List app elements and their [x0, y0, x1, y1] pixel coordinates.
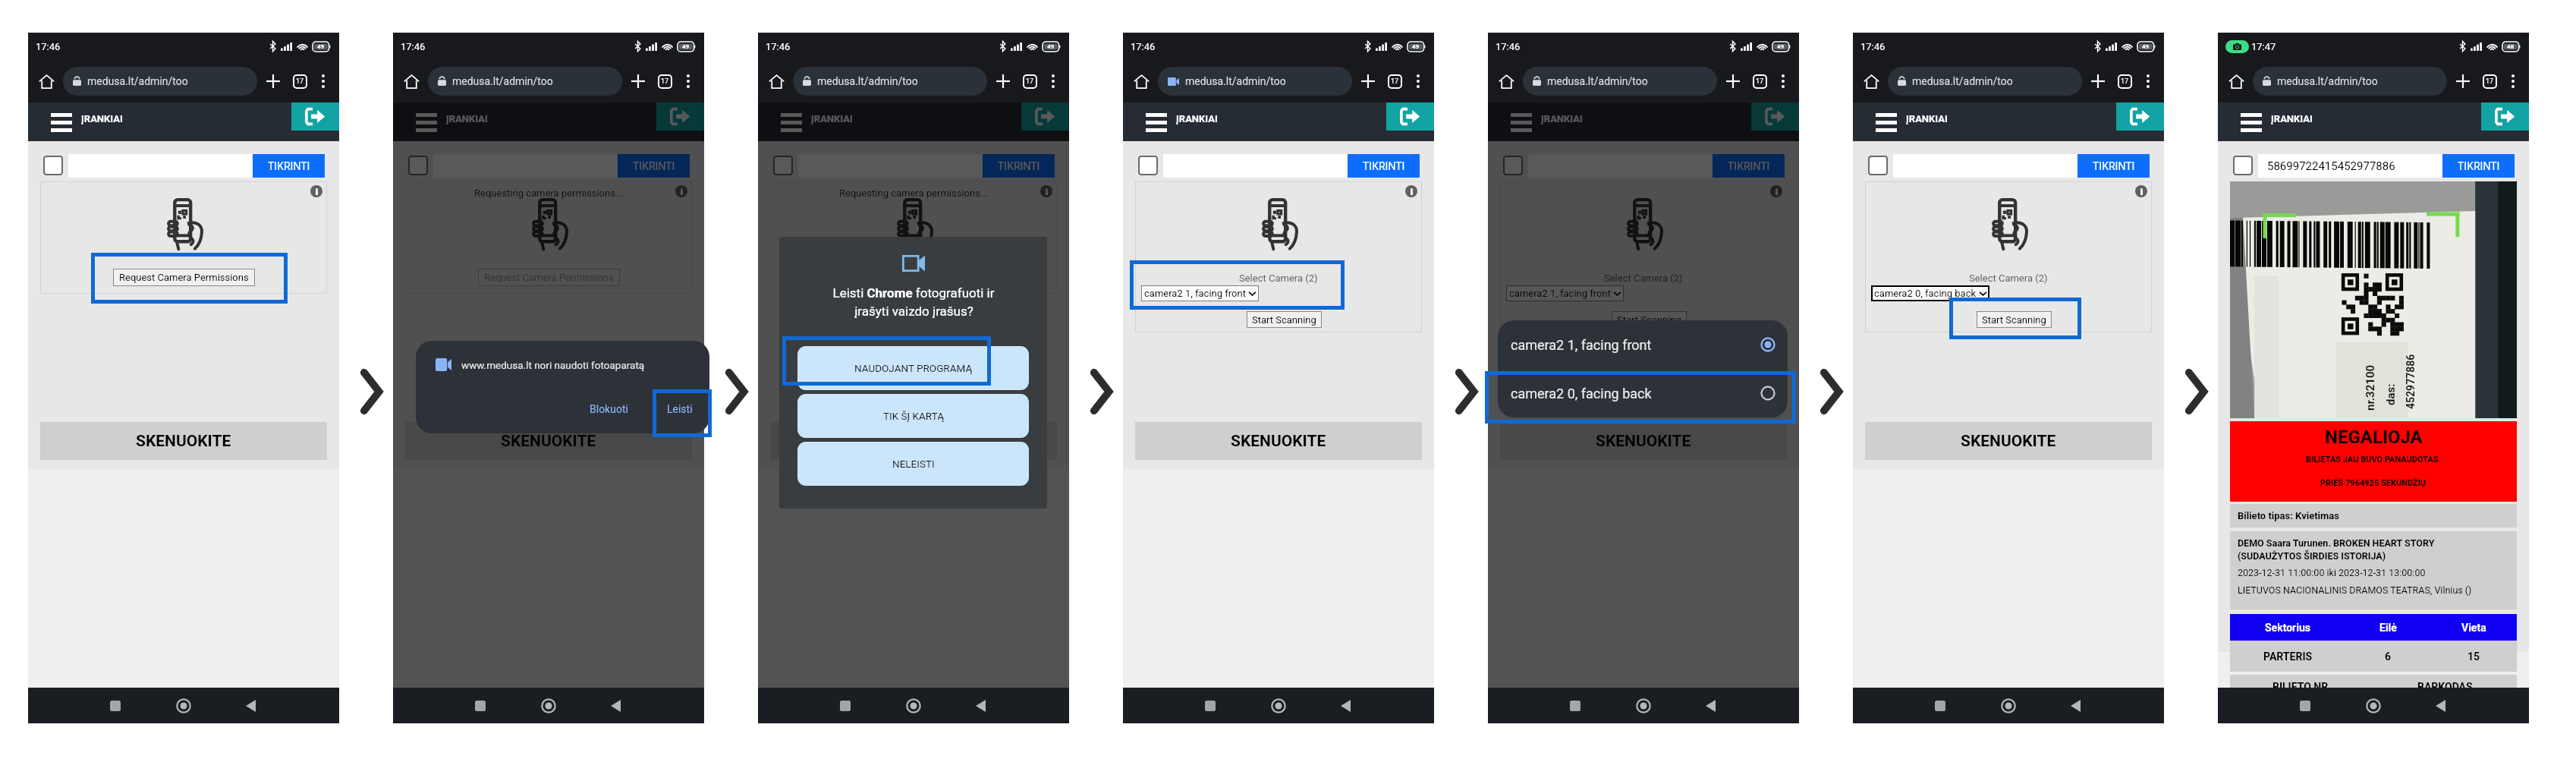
button[interactable]: Home [2357, 688, 2390, 723]
button[interactable]: NAUDOJANT PROGRAMĄ [797, 346, 1029, 390]
button[interactable]: TIKRINTI [253, 154, 325, 178]
button[interactable]: Tabs [1384, 71, 1405, 92]
button[interactable]: Info [1770, 185, 1782, 197]
button[interactable]: Logout [1751, 102, 1799, 131]
button[interactable]: New tab [1722, 71, 1744, 92]
button[interactable]: medusa.lt/admin/too [1523, 67, 1717, 96]
button[interactable]: Logout [1021, 102, 1069, 131]
button[interactable]: Info [675, 185, 687, 197]
button[interactable]: Home [1495, 70, 1518, 93]
button[interactable]: medusa.lt/admin/too [63, 67, 257, 96]
button[interactable]: Info [1405, 185, 1417, 197]
button[interactable]: camera2 0, facing back [1498, 369, 1788, 417]
button[interactable]: More options [2504, 72, 2522, 90]
button[interactable] [1138, 156, 1158, 175]
button[interactable]: Recents [1194, 688, 1227, 723]
button[interactable]: Menu [44, 112, 79, 133]
button[interactable]: Back [234, 688, 267, 723]
button[interactable]: Home [400, 70, 423, 93]
button[interactable]: Info [1040, 185, 1052, 197]
button[interactable]: Request Camera Permissions [843, 269, 985, 286]
button[interactable]: Leisti [650, 398, 709, 420]
button[interactable]: TIK ŠĮ KARTĄ [797, 394, 1029, 438]
button[interactable]: TIKRINTI [618, 154, 690, 178]
button[interactable]: Tabs [2114, 71, 2135, 92]
button[interactable]: Home [167, 688, 200, 723]
button[interactable]: Home [897, 688, 930, 723]
button[interactable] [408, 156, 428, 175]
button[interactable]: More options [2139, 72, 2157, 90]
button[interactable]: TIKRINTI [2077, 154, 2150, 178]
button[interactable]: More options [1044, 72, 1062, 90]
button[interactable]: Menu [1869, 112, 1904, 133]
button[interactable]: New tab [263, 71, 284, 92]
button[interactable]: More options [1409, 72, 1427, 90]
button[interactable]: Back [2059, 688, 2092, 723]
button[interactable]: More options [679, 72, 697, 90]
button[interactable]: Home [1627, 688, 1660, 723]
button[interactable]: TIKRINTI [1713, 154, 1785, 178]
button[interactable]: Menu [2234, 112, 2269, 133]
button[interactable]: Logout [1386, 102, 1434, 131]
button[interactable]: medusa.lt/admin/too [793, 67, 987, 96]
button[interactable]: Logout [291, 102, 339, 131]
button[interactable]: Recents [1558, 688, 1592, 723]
button[interactable]: Start Scanning [1977, 311, 2052, 328]
button[interactable]: TIKRINTI [983, 154, 1055, 178]
button[interactable]: camera2 1, facing front [1498, 320, 1788, 369]
button[interactable]: Tabs [1019, 71, 1040, 92]
button[interactable]: Home [1860, 70, 1882, 93]
button[interactable]: TIKRINTI [1348, 154, 1420, 178]
button[interactable]: medusa.lt/admin/too [2253, 67, 2447, 96]
button[interactable]: Start Scanning [1612, 311, 1687, 328]
button[interactable]: NELEISTI [797, 442, 1029, 486]
button[interactable]: camera2 1, facing front [1506, 285, 1624, 301]
button[interactable]: Logout [2116, 102, 2164, 131]
button[interactable]: Home [765, 70, 788, 93]
button[interactable]: Home [1262, 688, 1295, 723]
button[interactable]: Request Camera Permissions [478, 269, 620, 286]
button[interactable]: Recents [1923, 688, 1957, 723]
button[interactable]: Tabs [654, 71, 675, 92]
button[interactable]: Home [2225, 70, 2247, 93]
button[interactable]: Tabs [289, 71, 310, 92]
button[interactable]: Request Camera Permissions [113, 269, 255, 286]
button[interactable]: Back [1694, 688, 1727, 723]
button[interactable]: SKENUOKITE [405, 422, 692, 460]
button[interactable]: SKENUOKITE [770, 422, 1057, 460]
button[interactable] [2233, 156, 2253, 175]
button[interactable]: New tab [2087, 71, 2109, 92]
button[interactable]: Tabs [2479, 71, 2500, 92]
button[interactable]: SKENUOKITE [1135, 422, 1422, 460]
button[interactable]: Menu [774, 112, 809, 133]
button[interactable]: Back [964, 688, 997, 723]
button[interactable]: More options [1774, 72, 1792, 90]
button[interactable] [1868, 156, 1888, 175]
button[interactable]: Recents [829, 688, 862, 723]
button[interactable]: Recents [99, 688, 132, 723]
button[interactable]: More options [314, 72, 332, 90]
button[interactable]: Menu [1504, 112, 1539, 133]
button[interactable] [773, 156, 793, 175]
button[interactable]: Logout [656, 102, 704, 131]
button[interactable]: New tab [992, 71, 1014, 92]
button[interactable]: Home [532, 688, 565, 723]
button[interactable]: New tab [627, 71, 649, 92]
button[interactable]: medusa.lt/admin/too [1158, 67, 1352, 96]
button[interactable]: TIKRINTI [2442, 154, 2515, 178]
button[interactable]: SKENUOKITE [1500, 422, 1787, 460]
button[interactable]: Back [2423, 688, 2457, 723]
button[interactable]: medusa.lt/admin/too [1888, 67, 2082, 96]
button[interactable]: Back [599, 688, 632, 723]
button[interactable]: Blokuoti [582, 398, 636, 420]
button[interactable]: camera2 1, facing front [1141, 285, 1259, 301]
button[interactable] [43, 156, 63, 175]
button[interactable]: Info [310, 185, 322, 197]
button[interactable]: Home [1130, 70, 1153, 93]
button[interactable]: Start Scanning [1247, 311, 1322, 328]
button[interactable]: Back [1329, 688, 1362, 723]
button[interactable]: New tab [1357, 71, 1379, 92]
button[interactable] [1503, 156, 1523, 175]
button[interactable]: medusa.lt/admin/too [428, 67, 622, 96]
button[interactable]: Home [35, 70, 58, 93]
